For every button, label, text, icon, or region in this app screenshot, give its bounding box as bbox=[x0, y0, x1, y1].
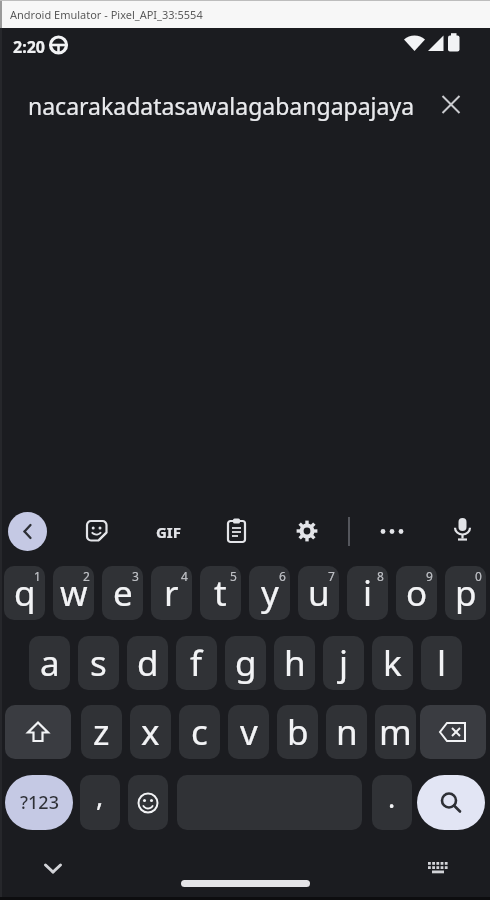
button[interactable]: r bbox=[151, 566, 192, 620]
staticText: m bbox=[379, 708, 412, 756]
staticText: 7 bbox=[328, 568, 335, 584]
button[interactable]: x bbox=[130, 705, 171, 759]
button[interactable] bbox=[42, 860, 64, 878]
staticText: 5 bbox=[230, 568, 237, 584]
staticText: c bbox=[191, 708, 208, 756]
staticText: j bbox=[339, 639, 349, 687]
button[interactable]: . bbox=[372, 775, 412, 830]
button[interactable]: f bbox=[176, 636, 217, 690]
staticText: n bbox=[336, 708, 358, 756]
button[interactable]: e bbox=[102, 566, 143, 620]
staticText: 3 bbox=[132, 568, 139, 584]
staticText: e bbox=[113, 569, 133, 617]
staticText: q bbox=[14, 569, 36, 617]
button[interactable]: k bbox=[372, 636, 413, 690]
button[interactable]: ?123 bbox=[5, 775, 73, 830]
button[interactable]: n bbox=[326, 705, 367, 759]
button[interactable]: a bbox=[29, 636, 70, 690]
staticText: 8 bbox=[377, 568, 384, 584]
staticText: w bbox=[60, 569, 88, 617]
button[interactable]: m bbox=[375, 705, 416, 759]
staticText: k bbox=[383, 639, 402, 687]
button[interactable] bbox=[417, 775, 485, 830]
button[interactable]: i bbox=[347, 566, 388, 620]
staticText: i bbox=[363, 569, 373, 617]
staticText: d bbox=[137, 639, 159, 687]
button[interactable]: GIF bbox=[148, 518, 188, 545]
button[interactable]: s bbox=[78, 636, 119, 690]
staticText: h bbox=[284, 639, 306, 687]
button[interactable]: o bbox=[396, 566, 437, 620]
staticText: r bbox=[164, 569, 179, 617]
staticText: v bbox=[240, 708, 258, 756]
staticText: g bbox=[235, 639, 257, 687]
staticText: l bbox=[437, 639, 447, 687]
button[interactable]: y bbox=[249, 566, 290, 620]
staticText: 4 bbox=[181, 568, 188, 584]
staticText: GIF bbox=[156, 522, 181, 542]
button[interactable] bbox=[224, 517, 251, 544]
button[interactable] bbox=[5, 705, 71, 759]
staticText: f bbox=[190, 639, 203, 687]
button[interactable]: b bbox=[277, 705, 318, 759]
staticText: o bbox=[406, 569, 428, 617]
button[interactable]: p bbox=[445, 566, 486, 620]
staticText: s bbox=[90, 639, 107, 687]
button[interactable]: l bbox=[421, 636, 462, 690]
button[interactable] bbox=[294, 518, 321, 545]
button[interactable] bbox=[438, 91, 466, 119]
button[interactable]: t bbox=[200, 566, 241, 620]
button[interactable]: d bbox=[127, 636, 168, 690]
staticText: z bbox=[93, 708, 110, 756]
button[interactable]: j bbox=[323, 636, 364, 690]
button[interactable] bbox=[128, 775, 168, 830]
staticText: 1 bbox=[34, 568, 41, 584]
staticText: ?123 bbox=[20, 790, 59, 815]
staticText: u bbox=[308, 569, 330, 617]
staticText: a bbox=[40, 639, 60, 687]
staticText: , bbox=[96, 777, 104, 814]
staticText: y bbox=[261, 569, 279, 617]
staticText: . bbox=[388, 779, 396, 816]
button[interactable]: v bbox=[228, 705, 269, 759]
button[interactable] bbox=[8, 512, 47, 551]
staticText: 9 bbox=[426, 568, 433, 584]
staticText: x bbox=[141, 708, 160, 756]
button[interactable]: u bbox=[298, 566, 339, 620]
staticText: b bbox=[287, 708, 309, 756]
button[interactable]: q bbox=[4, 566, 45, 620]
staticText: 2:20 bbox=[13, 36, 45, 58]
button[interactable]: z bbox=[81, 705, 122, 759]
button[interactable]: c bbox=[179, 705, 220, 759]
staticText: t bbox=[214, 569, 227, 617]
button[interactable] bbox=[378, 518, 406, 545]
button[interactable]: h bbox=[274, 636, 315, 690]
button[interactable] bbox=[420, 705, 486, 759]
staticText: p bbox=[455, 569, 477, 617]
staticText: nacarakadatasawalagabangapajaya bbox=[28, 90, 415, 121]
staticText: 6 bbox=[279, 568, 286, 584]
button[interactable] bbox=[449, 516, 476, 543]
staticText: 0 bbox=[475, 568, 482, 584]
button[interactable]: w bbox=[53, 566, 94, 620]
button[interactable]: , bbox=[80, 775, 120, 830]
button[interactable] bbox=[84, 518, 111, 545]
button[interactable]: g bbox=[225, 636, 266, 690]
staticText: Android Emulator - Pixel_API_33:5554 bbox=[10, 7, 203, 22]
button[interactable] bbox=[426, 860, 450, 878]
staticText: 2 bbox=[83, 568, 90, 584]
